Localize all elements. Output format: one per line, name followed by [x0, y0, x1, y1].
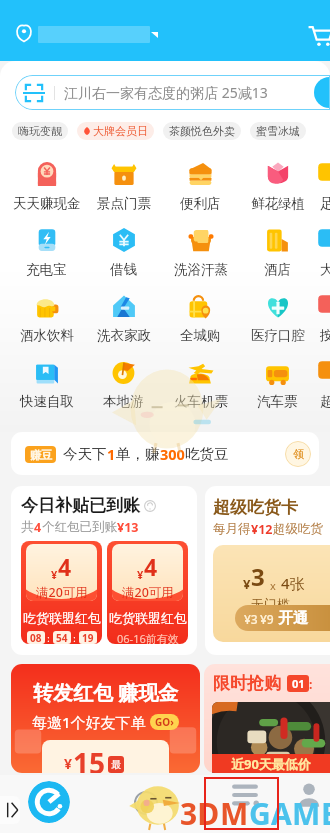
staticText: 限时抢购 — [213, 673, 281, 694]
button[interactable]: 赚豆 — [11, 432, 319, 475]
button[interactable]: 领 — [285, 441, 311, 467]
button[interactable]: 酒店 — [239, 227, 316, 293]
staticText: x — [270, 578, 276, 593]
staticText: 15 — [73, 744, 106, 773]
staticText: 近90天最低价 — [231, 755, 311, 773]
staticText: : — [309, 676, 313, 692]
staticText: 酒店 — [264, 261, 291, 278]
staticText: 医疗口腔 — [251, 327, 305, 344]
staticText: ¥ — [64, 754, 73, 773]
button[interactable]: 医疗口腔 — [239, 293, 316, 359]
button[interactable]: 景点门票 — [85, 161, 162, 227]
staticText: 领 — [293, 447, 304, 461]
button[interactable]: 超 — [316, 359, 330, 425]
button[interactable]: 江川右一家有态度的粥店 25减13 — [15, 75, 330, 110]
staticText: 开通 — [278, 609, 308, 628]
button[interactable]: ¥3 — [235, 605, 330, 631]
staticText: 大牌会员日 — [93, 124, 148, 138]
staticText: G — [249, 793, 271, 833]
button[interactable]: Home — [28, 781, 70, 823]
button[interactable]: 今日补贴已到账 — [11, 486, 197, 655]
staticText: GO› — [155, 715, 174, 729]
button[interactable]: 嗨玩变靓 — [12, 122, 68, 140]
staticText: 火车机票 — [174, 393, 228, 410]
button[interactable]: ¥ — [107, 541, 188, 644]
staticText: : — [45, 632, 53, 644]
button[interactable]: 超级吃货卡 — [205, 486, 330, 655]
staticText: 满20可用 — [36, 584, 88, 601]
staticText: ¥ — [137, 567, 144, 582]
staticText: 4 — [34, 519, 42, 536]
staticText: 充电宝 — [26, 261, 67, 278]
staticText: 大 — [320, 261, 330, 278]
staticText: 超级吃货卡 — [213, 497, 298, 518]
staticText: 足 — [320, 195, 330, 212]
staticText: 酒水饮料 — [20, 327, 74, 344]
button[interactable]: 按 — [316, 293, 330, 359]
staticText: 汽车票 — [257, 393, 298, 410]
staticText: 嗨玩变靓 — [18, 124, 62, 138]
button[interactable]: 便利店 — [162, 161, 239, 227]
button[interactable]: ¥ — [21, 541, 102, 644]
staticText: 吃货联盟红包 — [109, 610, 187, 626]
button[interactable]: 全城购 — [162, 293, 239, 359]
button[interactable]: 大 — [316, 227, 330, 293]
button[interactable]: 鲜花绿植 — [239, 161, 316, 227]
button[interactable] — [38, 26, 158, 43]
staticText: 本地游 — [103, 393, 144, 410]
staticText: 每邀1个好友下单 — [32, 712, 146, 732]
button[interactable]: 洗衣家政 — [85, 293, 162, 359]
staticText: A — [271, 793, 292, 833]
staticText: ¥ — [51, 567, 58, 582]
staticText: 快速自取 — [20, 393, 74, 410]
staticText: M — [220, 793, 249, 833]
staticText: ¥9 — [260, 611, 274, 627]
button[interactable]: Profile — [292, 782, 326, 808]
staticText: 最 — [111, 758, 121, 771]
staticText: 54 — [56, 631, 68, 644]
button[interactable]: 充电宝 — [8, 227, 85, 293]
button[interactable]: 快速自取 — [8, 359, 85, 425]
staticText: ¥13 — [117, 519, 139, 536]
staticText: 19 — [82, 631, 94, 644]
staticText: 超 — [320, 393, 330, 410]
staticText: 3D — [180, 793, 220, 833]
staticText: 鲜花绿植 — [251, 195, 305, 212]
button[interactable]: 天天赚现金 — [8, 161, 85, 227]
button[interactable]: Orders — [228, 782, 262, 808]
staticText: M — [292, 793, 321, 833]
staticText: 吃货豆 — [185, 445, 229, 463]
button[interactable]: 足 — [316, 161, 330, 227]
button[interactable]: Discover — [125, 782, 167, 824]
button[interactable]: 大牌会员日 — [77, 122, 154, 140]
staticText: 江川右一家有态度的粥店 25减13 — [64, 83, 268, 102]
staticText: 无门槛 — [251, 596, 290, 612]
staticText: 08 — [30, 631, 42, 644]
button[interactable]: Location — [15, 24, 33, 45]
staticText: 4张 — [281, 573, 305, 593]
button[interactable]: 茶颜悦色外卖 — [163, 122, 241, 140]
button[interactable]: 酒水饮料 — [8, 293, 85, 359]
staticText: 洗衣家政 — [97, 327, 151, 344]
button[interactable]: 蜜雪冰城 — [250, 122, 306, 140]
staticText: E — [321, 793, 330, 833]
staticText: 便利店 — [180, 195, 221, 212]
staticText: 按 — [320, 327, 330, 344]
staticText: ¥12 — [251, 521, 273, 538]
staticText: 茶颜悦色外卖 — [169, 124, 235, 138]
button[interactable]: 洗浴汗蒸 — [162, 227, 239, 293]
button[interactable]: Cart — [307, 23, 330, 48]
button[interactable]: 借钱 — [85, 227, 162, 293]
staticText: 1 — [107, 444, 116, 464]
staticText: 4 — [58, 551, 72, 582]
staticText: 满20可用 — [122, 584, 174, 601]
button[interactable]: 本地游 — [85, 359, 162, 425]
button[interactable]: 限时抢购 — [204, 664, 330, 773]
button[interactable]: 火车机票 — [162, 359, 239, 425]
button[interactable]: Expand sidebar — [0, 796, 20, 824]
button[interactable]: 转发红包 赚现金 — [11, 664, 200, 773]
staticText: 今天下 — [63, 445, 107, 463]
staticText: 洗浴汗蒸 — [174, 261, 228, 278]
staticText: 4 — [144, 551, 158, 582]
button[interactable]: 汽车票 — [239, 359, 316, 425]
